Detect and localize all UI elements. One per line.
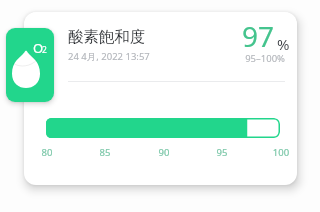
staticText: 2 — [42, 44, 47, 56]
button[interactable]: 酸素飽和度 — [24, 12, 297, 185]
staticText: % — [277, 34, 290, 54]
button[interactable]: Oxygen saturation — [6, 28, 54, 102]
staticText: 97 — [242, 17, 275, 55]
staticText: O — [33, 39, 44, 57]
staticText: 酸素飽和度 — [68, 27, 146, 47]
staticText: 85 — [85, 146, 125, 159]
staticText: 100 — [261, 146, 297, 159]
staticText: 95–100% — [195, 52, 285, 65]
staticText: 95 — [202, 146, 242, 159]
staticText: 24 4月, 2022 13:57 — [68, 50, 150, 63]
staticText: 80 — [27, 146, 67, 159]
staticText: 90 — [144, 146, 184, 159]
